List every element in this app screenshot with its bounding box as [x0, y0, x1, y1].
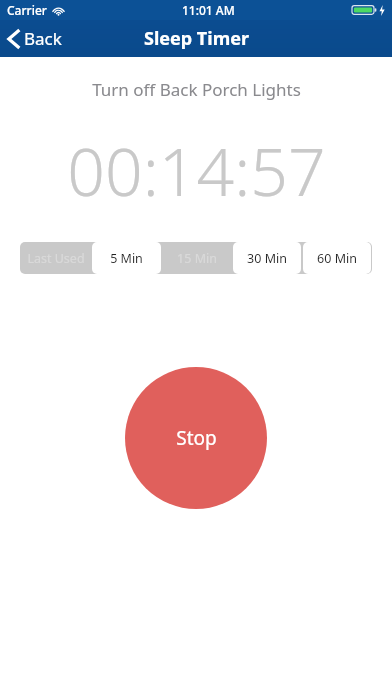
button[interactable]: 5 Min	[92, 242, 161, 274]
staticText: 15 Min	[177, 250, 217, 267]
staticText: Carrier	[7, 2, 47, 18]
staticText: Turn off Back Porch Lights	[92, 78, 301, 101]
staticText: Back	[24, 27, 62, 50]
staticText: 60 Min	[317, 250, 357, 267]
staticText: 5 Min	[110, 250, 143, 267]
button[interactable]: 15 Min	[162, 242, 232, 274]
staticText: 30 Min	[247, 250, 287, 267]
button[interactable]: Back	[0, 23, 72, 54]
button[interactable]: 30 Min	[233, 242, 301, 274]
staticText: Stop	[176, 425, 217, 451]
button[interactable]: Last Used	[20, 242, 91, 274]
staticText: Last Used	[27, 250, 85, 267]
staticText: 11:01 AM	[182, 2, 235, 18]
button[interactable]: Stop timer	[125, 367, 267, 509]
staticText: Sleep Timer	[144, 26, 249, 51]
staticText: 00:14:57	[67, 125, 326, 215]
button[interactable]: 60 Min	[303, 242, 371, 274]
